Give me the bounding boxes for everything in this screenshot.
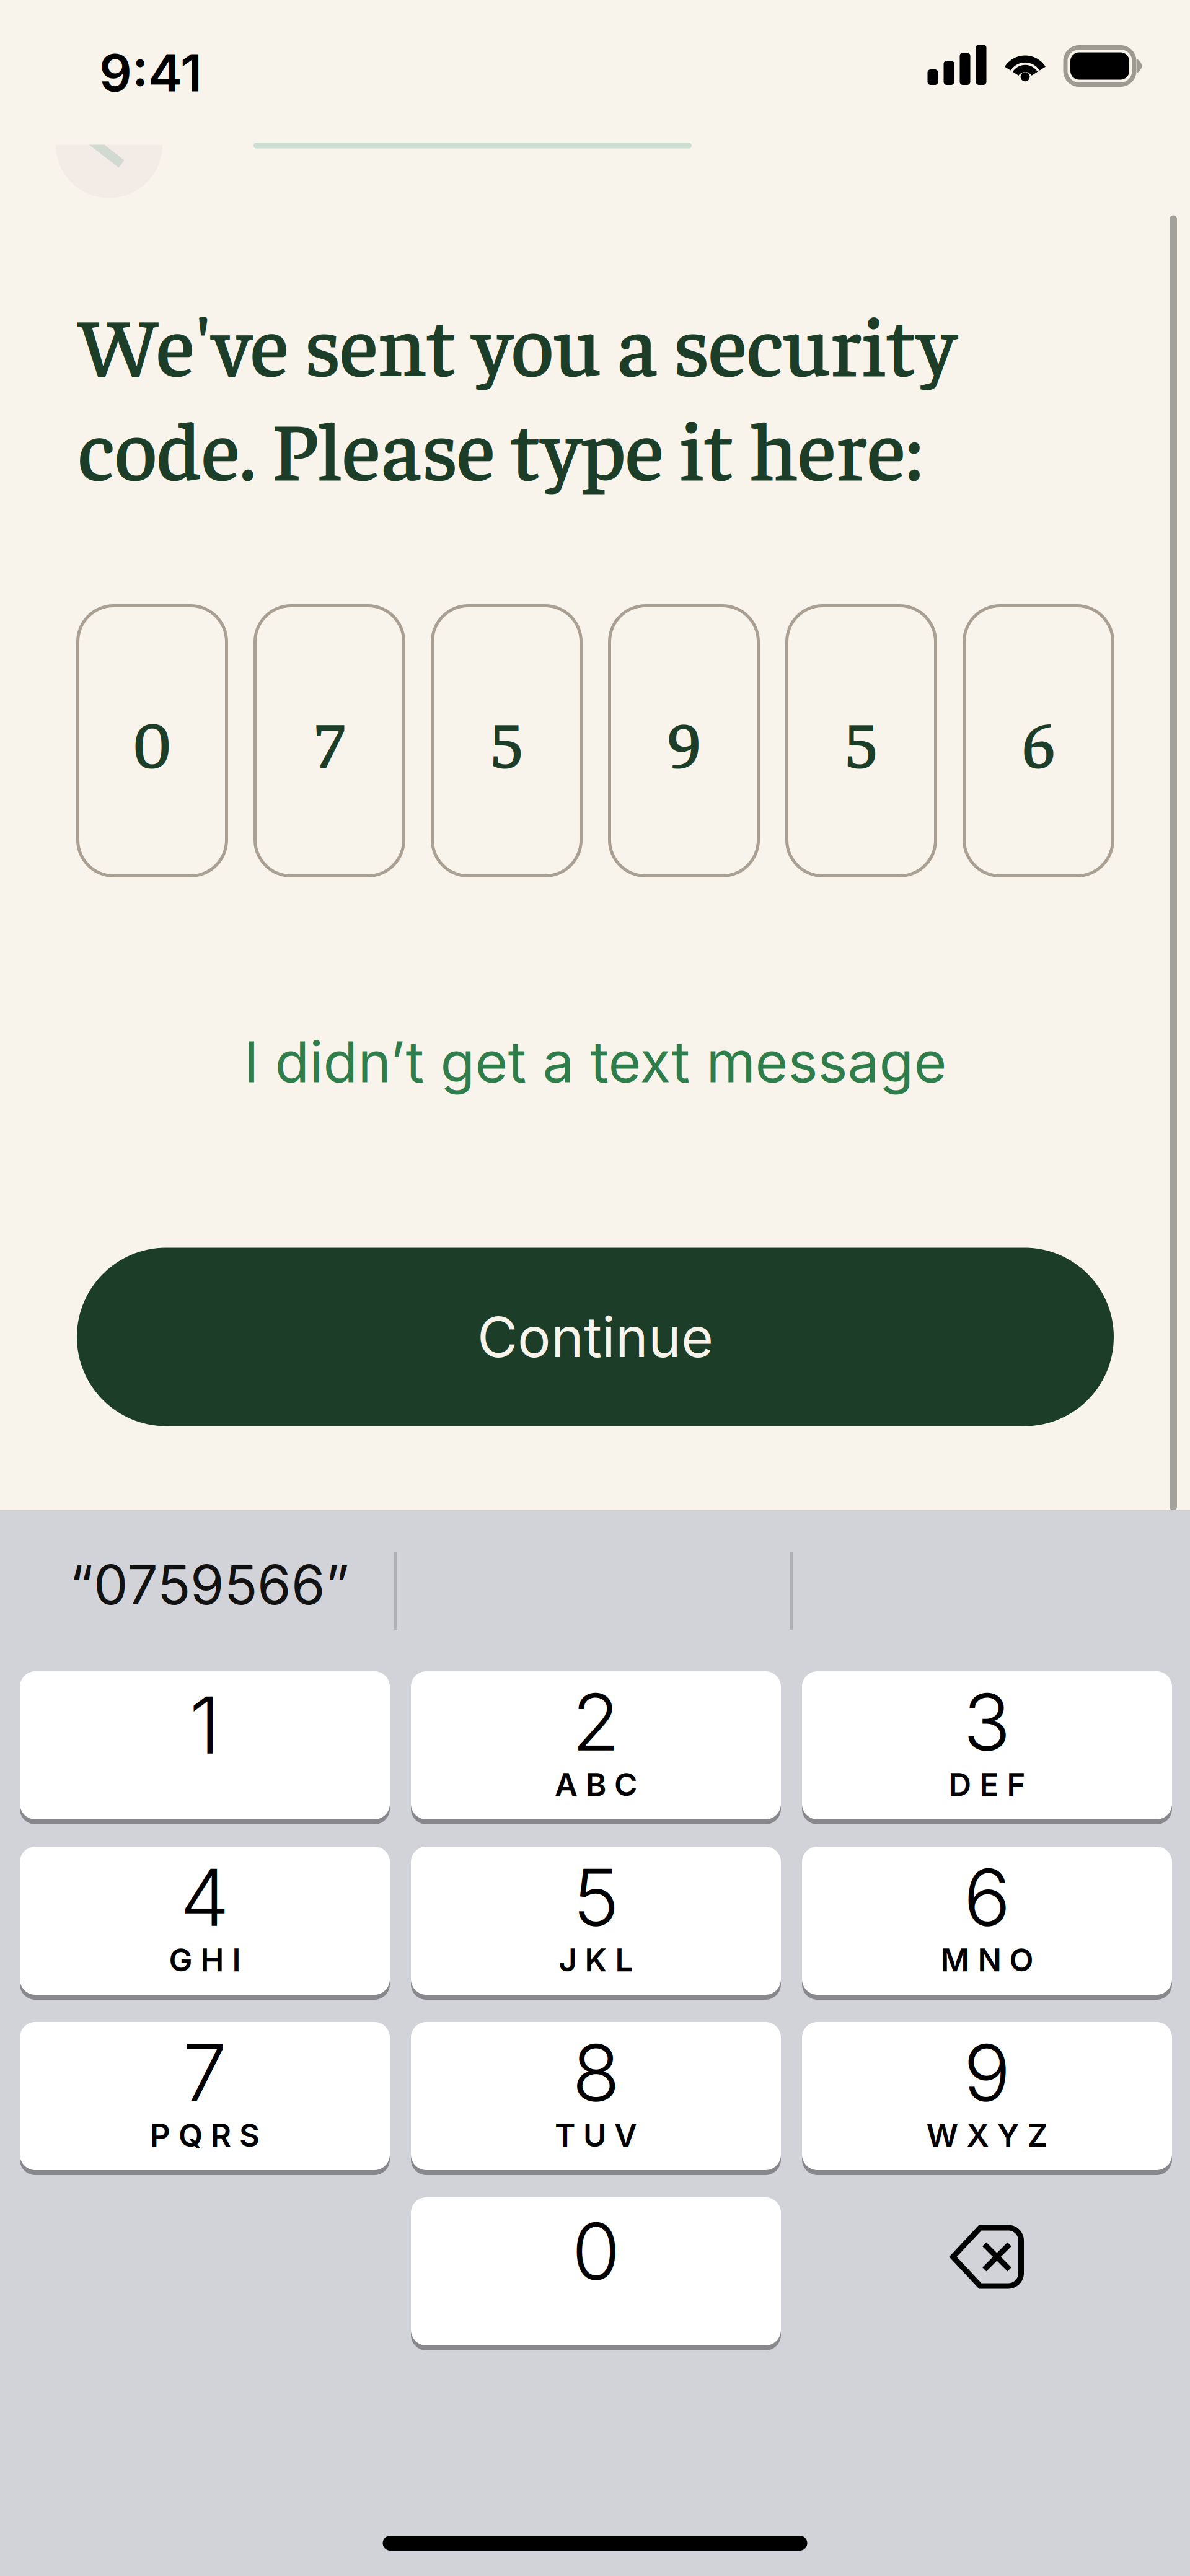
button[interactable]: 8 xyxy=(411,2022,781,2175)
staticText: W X Y Z xyxy=(926,2116,1048,2154)
button[interactable]: Continue xyxy=(77,1248,1114,1426)
button[interactable]: 0 xyxy=(411,2197,781,2350)
staticText: 0 xyxy=(132,699,172,782)
button[interactable]: 2 xyxy=(411,1671,781,1824)
staticText: 4 xyxy=(180,1850,230,1945)
staticText: 1 xyxy=(189,1677,220,1772)
button[interactable]: Back xyxy=(56,145,162,198)
button[interactable]: 9 xyxy=(802,2022,1172,2175)
button[interactable]: 3 xyxy=(802,1671,1172,1824)
staticText: T U V xyxy=(555,2116,637,2154)
staticText: Continue xyxy=(477,1303,713,1370)
button[interactable]: 9 xyxy=(610,606,758,876)
button[interactable]: “0759566” xyxy=(0,1550,394,1632)
button[interactable]: 5 xyxy=(432,606,581,876)
staticText: J K L xyxy=(559,1941,633,1979)
staticText: 5 xyxy=(492,699,522,782)
staticText: 9:41 xyxy=(99,42,202,104)
button[interactable]: 7 xyxy=(20,2022,390,2175)
button[interactable]: I didn’t get a text message xyxy=(78,1009,1113,1114)
staticText: P Q R S xyxy=(150,2116,260,2154)
staticText: 7 xyxy=(315,699,344,782)
button[interactable]: 0 xyxy=(78,606,227,876)
button[interactable]: 1 xyxy=(20,1671,390,1824)
staticText: 6 xyxy=(963,1850,1011,1945)
button[interactable]: 5 xyxy=(787,606,936,876)
staticText: 9 xyxy=(667,699,701,782)
staticText: M N O xyxy=(941,1941,1034,1979)
staticText: We've sent you a security code. Please t… xyxy=(78,290,956,499)
staticText: 3 xyxy=(963,1674,1011,1769)
staticText: 8 xyxy=(572,2025,620,2120)
button[interactable]: Delete xyxy=(802,2197,1172,2350)
button[interactable]: 6 xyxy=(964,606,1113,876)
staticText: 5 xyxy=(846,699,876,782)
staticText: G H I xyxy=(169,1941,241,1979)
staticText: “0759566” xyxy=(69,1552,350,1618)
staticText: 0 xyxy=(572,2204,620,2299)
button[interactable]: 7 xyxy=(255,606,404,876)
staticText: 6 xyxy=(1021,699,1056,782)
staticText: 9 xyxy=(963,2025,1011,2120)
staticText: 5 xyxy=(573,1850,619,1945)
staticText: A B C xyxy=(555,1766,637,1804)
button[interactable]: 5 xyxy=(411,1847,781,2000)
button[interactable]: 4 xyxy=(20,1847,390,2000)
staticText: I didn’t get a text message xyxy=(244,1028,947,1096)
staticText: 7 xyxy=(183,2025,227,2120)
button[interactable]: 6 xyxy=(802,1847,1172,2000)
staticText: D E F xyxy=(949,1766,1025,1804)
staticText: 2 xyxy=(572,1674,620,1769)
